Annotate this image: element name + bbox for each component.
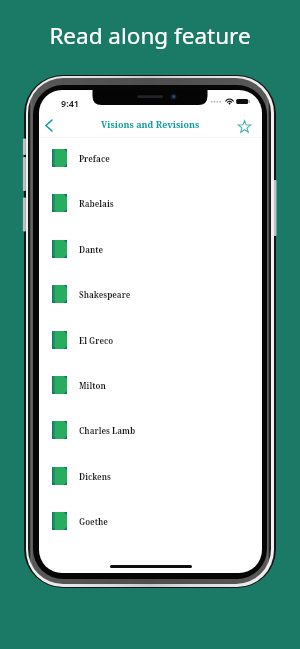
staticText: Dickens bbox=[79, 471, 111, 482]
button[interactable]: Dante bbox=[39, 226, 262, 271]
staticText: 9:41 bbox=[61, 97, 79, 109]
button[interactable]: Dickens bbox=[39, 453, 262, 498]
staticText: Rabelais bbox=[79, 198, 114, 209]
button[interactable]: Back bbox=[40, 114, 58, 136]
staticText: Visions and Revisions bbox=[101, 118, 200, 130]
staticText: Read along feature bbox=[0, 20, 300, 51]
staticText: Charles Lamb bbox=[79, 425, 136, 436]
button[interactable]: Milton bbox=[39, 362, 262, 407]
button[interactable]: Preface bbox=[39, 135, 262, 180]
button[interactable]: Charles Lamb bbox=[39, 407, 262, 452]
staticText: Shakespeare bbox=[79, 289, 131, 300]
staticText: Goethe bbox=[79, 516, 108, 527]
button[interactable]: Shakespeare bbox=[39, 271, 262, 316]
staticText: Milton bbox=[79, 380, 106, 391]
button[interactable]: El Greco bbox=[39, 317, 262, 362]
staticText: Dante bbox=[79, 244, 104, 255]
staticText: Preface bbox=[79, 153, 110, 164]
button[interactable]: Rabelais bbox=[39, 180, 262, 225]
button[interactable]: Goethe bbox=[39, 498, 262, 543]
button[interactable]: Add to favourites bbox=[234, 116, 254, 136]
staticText: El Greco bbox=[79, 335, 114, 346]
